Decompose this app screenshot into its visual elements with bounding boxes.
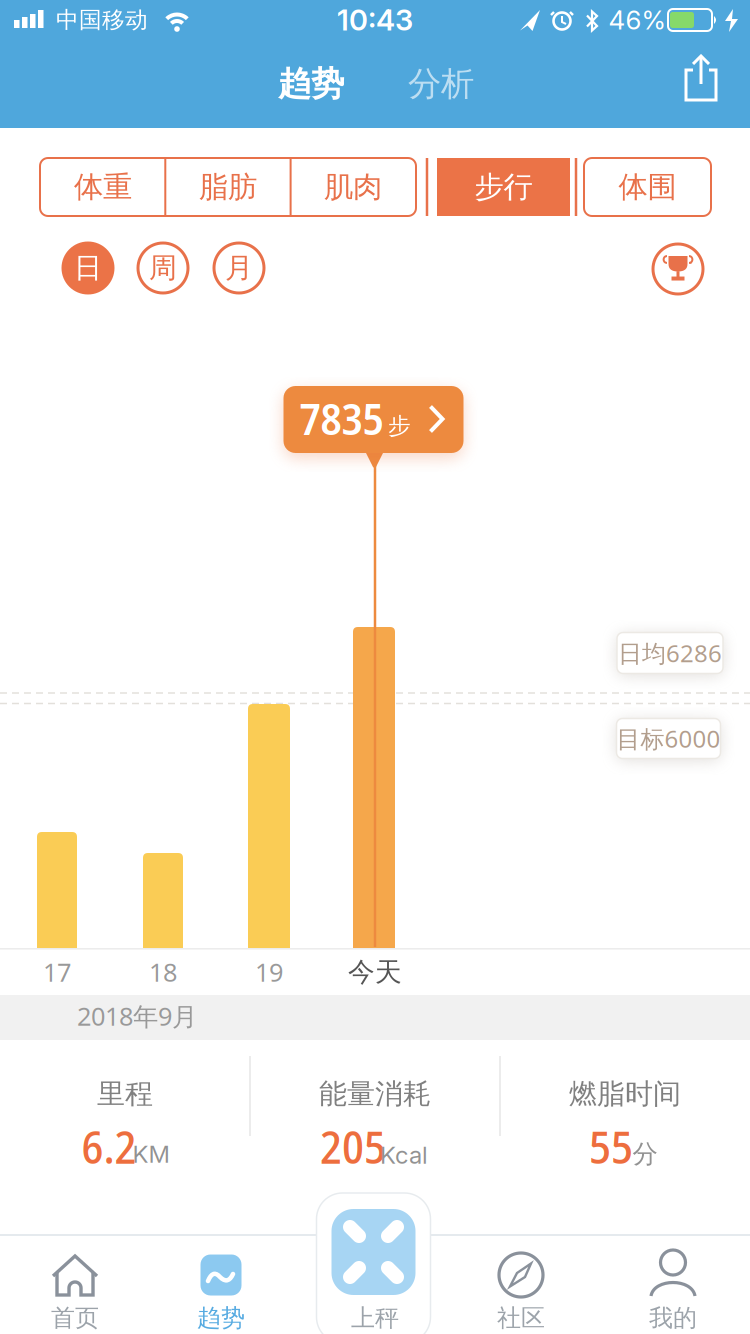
staticText: 6.2	[81, 1115, 136, 1177]
staticText: 17	[43, 955, 71, 989]
staticText: 10:43	[337, 2, 413, 38]
button[interactable]: 7835	[283, 386, 465, 470]
staticText: 中国移动	[56, 6, 148, 34]
button[interactable]: 步行	[437, 158, 570, 216]
button[interactable]: 脂肪	[166, 158, 290, 216]
staticText: 社区	[497, 1303, 545, 1333]
staticText: 燃脂时间	[569, 1077, 681, 1111]
staticText: 目标6000	[616, 723, 720, 754]
staticText: 2018年9月	[77, 999, 197, 1033]
button[interactable]: 体围	[584, 158, 711, 216]
staticText: 体重	[74, 169, 132, 205]
staticText: 18	[149, 955, 177, 989]
staticText: 能量消耗	[319, 1077, 431, 1111]
button[interactable]: 肌肉	[291, 158, 415, 216]
button[interactable]: 首页	[0, 1235, 150, 1334]
button[interactable]: 周	[138, 243, 188, 293]
staticText: 月	[225, 251, 253, 285]
button[interactable]: 我的	[599, 1235, 749, 1334]
staticText: 里程	[97, 1077, 153, 1111]
button[interactable]: 体重	[41, 158, 165, 216]
button[interactable]: 排行榜	[653, 244, 703, 294]
staticText: 46%	[608, 4, 665, 36]
staticText: 步	[388, 412, 411, 440]
staticText: 7835	[299, 388, 383, 448]
staticText: 55	[589, 1115, 633, 1177]
staticText: 日均6286	[618, 637, 722, 669]
staticText: 首页	[51, 1303, 99, 1333]
button[interactable]: 趋势	[278, 63, 344, 104]
staticText: 肌肉	[324, 169, 382, 205]
staticText: 趋势	[197, 1303, 245, 1333]
staticText: 205	[320, 1115, 386, 1177]
button[interactable]: 月	[214, 243, 264, 293]
staticText: 脂肪	[199, 169, 257, 205]
button[interactable]: 趋势	[148, 1235, 298, 1334]
staticText: 19	[255, 955, 283, 989]
button[interactable]: 分享	[673, 52, 729, 108]
staticText: KM	[132, 1139, 169, 1168]
staticText: 我的	[649, 1303, 697, 1333]
staticText: 周	[149, 251, 177, 285]
staticText: 上秤	[351, 1303, 399, 1333]
button[interactable]: 分析	[408, 63, 474, 104]
button[interactable]: 上秤	[300, 1189, 450, 1334]
button[interactable]: 日	[61, 241, 114, 294]
staticText: 日	[74, 251, 102, 285]
staticText: 趋势	[278, 63, 344, 104]
staticText: 分	[632, 1138, 657, 1169]
staticText: 步行	[474, 169, 532, 205]
staticText: 分析	[408, 63, 474, 104]
button[interactable]: 社区	[448, 1235, 598, 1334]
staticText: Kcal	[380, 1140, 428, 1169]
staticText: 体围	[618, 169, 676, 205]
staticText: 今天	[348, 956, 402, 988]
